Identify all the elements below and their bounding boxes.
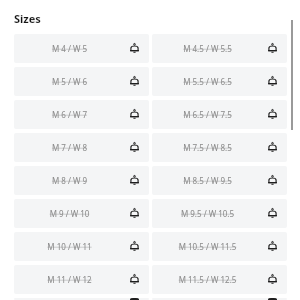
staticText: M 5.5 / W 6.5 <box>158 76 257 87</box>
other: Notify me when M 7.5 / W 8.5 is back in … <box>267 142 278 153</box>
other: Notify me when M 4.5 / W 5.5 is back in … <box>267 43 278 54</box>
button[interactable]: M 8 / W 9 <box>14 166 149 195</box>
staticText: M 4 / W 5 <box>20 43 119 54</box>
button[interactable]: M 10.5 / W 11.5 <box>152 232 287 261</box>
other: Notify me when M 11 / W 12 is back in st… <box>129 274 140 285</box>
staticText: M 7.5 / W 8.5 <box>158 142 257 153</box>
button[interactable]: M 6 / W 7 <box>14 100 149 129</box>
other: Notify me when M 10 / W 11 is back in st… <box>129 241 140 252</box>
other: Notify me when M 5.5 / W 6.5 is back in … <box>267 76 278 87</box>
button[interactable]: M 9 / W 10 <box>14 199 149 228</box>
other: Notify me when M 10.5 / W 11.5 is back i… <box>267 241 278 252</box>
staticText: M 7 / W 8 <box>20 142 119 153</box>
staticText: M 8.5 / W 9.5 <box>158 175 257 186</box>
button[interactable]: M 5 / W 6 <box>14 67 149 96</box>
other: Notify me when M 7 / W 8 is back in stoc… <box>129 142 140 153</box>
other: Notify me when M 12 / W 13 is back in st… <box>129 298 140 300</box>
other: Notify me when M 8.5 / W 9.5 is back in … <box>267 175 278 186</box>
button[interactable]: M 6.5 / W 7.5 <box>152 100 287 129</box>
staticText: M 10 / W 11 <box>20 241 119 252</box>
other: Notify me when M 8 / W 9 is back in stoc… <box>129 175 140 186</box>
button[interactable]: M 11 / W 12 <box>14 265 149 294</box>
other: Notify me when M 6.5 / W 7.5 is back in … <box>267 109 278 120</box>
staticText: M 6 / W 7 <box>20 109 119 120</box>
other: Notify me when M 9.5 / W 10.5 is back in… <box>267 208 278 219</box>
staticText: M 6.5 / W 7.5 <box>158 109 257 120</box>
other: Notify me when M 12.5 / W 13.5 is back i… <box>267 298 278 300</box>
other: Notify me when M 4 / W 5 is back in stoc… <box>129 43 140 54</box>
other: Notify me when M 11.5 / W 12.5 is back i… <box>267 274 278 285</box>
button[interactable]: M 8.5 / W 9.5 <box>152 166 287 195</box>
button[interactable]: M 10 / W 11 <box>14 232 149 261</box>
button[interactable]: M 7.5 / W 8.5 <box>152 133 287 162</box>
button[interactable]: M 11.5 / W 12.5 <box>152 265 287 294</box>
staticText: M 10.5 / W 11.5 <box>158 241 257 252</box>
other: Notify me when M 6 / W 7 is back in stoc… <box>129 109 140 120</box>
staticText: M 8 / W 9 <box>20 175 119 186</box>
button[interactable]: M 4.5 / W 5.5 <box>152 34 287 63</box>
other: Notify me when M 5 / W 6 is back in stoc… <box>129 76 140 87</box>
other: Notify me when M 9 / W 10 is back in sto… <box>129 208 140 219</box>
button[interactable]: M 7 / W 8 <box>14 133 149 162</box>
staticText: M 4.5 / W 5.5 <box>158 43 257 54</box>
staticText: M 9 / W 10 <box>20 208 119 219</box>
staticText: Sizes <box>14 11 41 26</box>
button[interactable]: M 12.5 / W 13.5 <box>152 298 287 300</box>
staticText: M 9.5 / W 10.5 <box>158 208 257 219</box>
staticText: M 11 / W 12 <box>20 274 119 285</box>
staticText: M 11.5 / W 12.5 <box>158 274 257 285</box>
button[interactable]: M 4 / W 5 <box>14 34 149 63</box>
button[interactable]: M 9.5 / W 10.5 <box>152 199 287 228</box>
staticText: M 5 / W 6 <box>20 76 119 87</box>
button[interactable]: M 5.5 / W 6.5 <box>152 67 287 96</box>
button[interactable]: M 12 / W 13 <box>14 298 149 300</box>
